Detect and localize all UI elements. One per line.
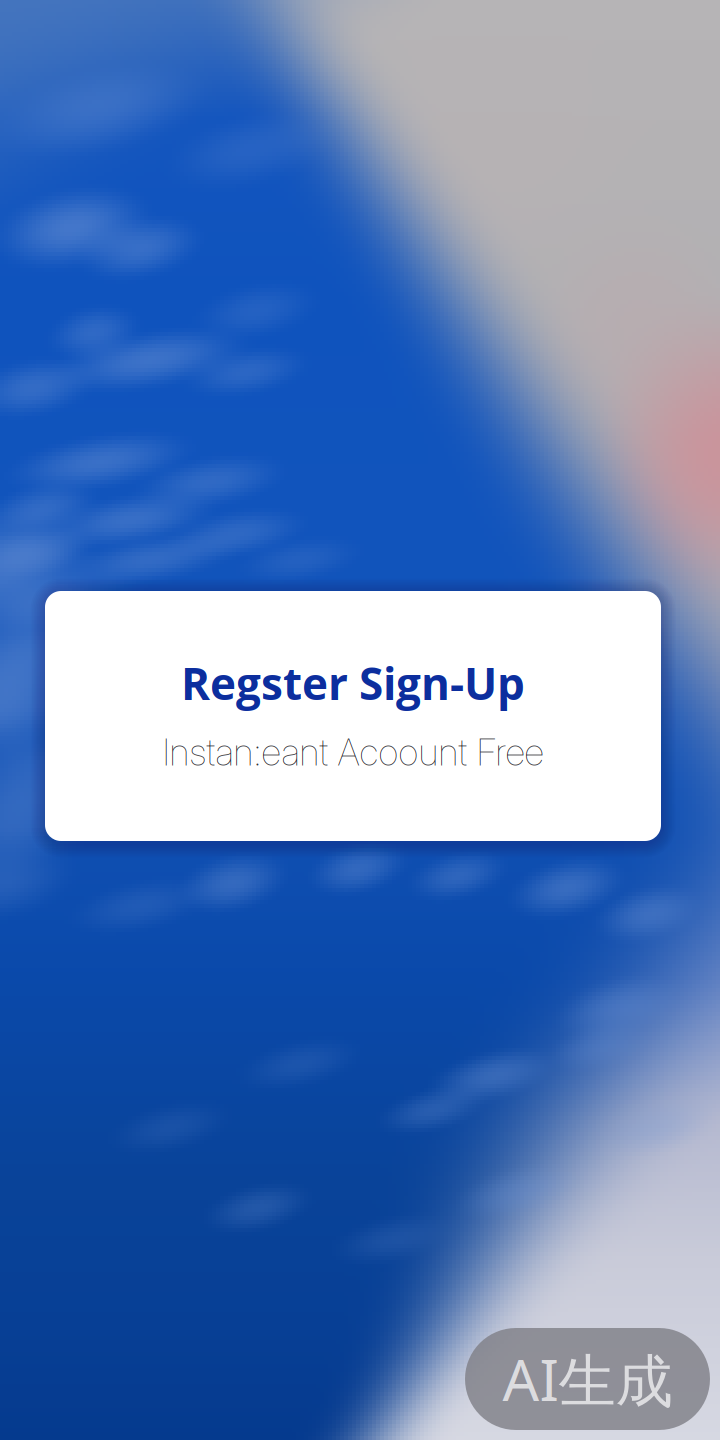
button[interactable]: Regster Sign-Up: [45, 591, 661, 841]
staticText: Instan:eant Acoount Free: [162, 730, 543, 774]
staticText: Regster Sign-Up: [181, 653, 525, 713]
staticText: AI生成: [502, 1341, 672, 1417]
